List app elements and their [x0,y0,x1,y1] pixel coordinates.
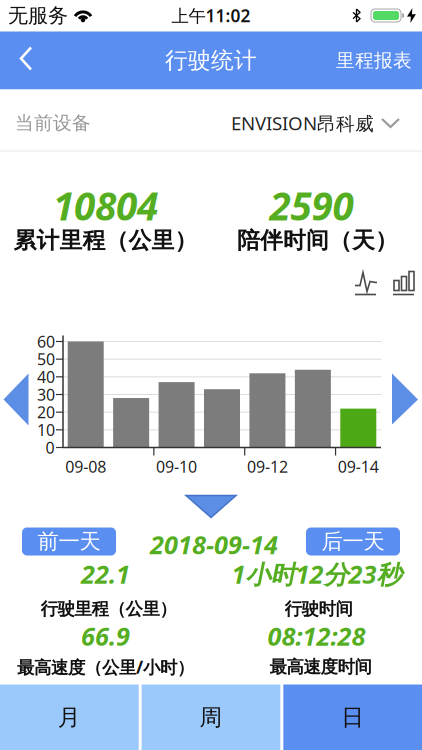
button[interactable]: 前一天 [22,527,116,555]
staticText: 50 [37,348,55,370]
button[interactable]: 后一段 [392,373,418,425]
staticText: 前一天 [37,528,100,555]
staticText: 10 [37,419,55,440]
staticText: 09-12 [247,456,288,477]
staticText: 60 [37,331,55,352]
staticText: 行驶里程（公里） [40,598,176,620]
staticText: 后一天 [321,528,384,555]
staticText: 里程报表 [336,49,412,72]
staticText: 周 [199,704,222,731]
staticText: 2018-09-14 [150,528,278,561]
staticText: 1小时12分23秒 [231,557,401,591]
staticText: 09-10 [156,456,197,477]
staticText: 09-08 [65,456,106,477]
staticText: 20 [37,401,55,423]
button[interactable]: 月 [0,684,139,750]
button[interactable]: 柱状图 [393,269,415,296]
button[interactable]: 周 [142,684,280,750]
staticText: 累计里程（公里） [13,227,197,254]
staticText: 上午11:02 [171,4,250,27]
staticText: 日 [341,704,364,731]
staticText: 30 [37,384,55,405]
button[interactable]: 返回 [0,31,50,89]
staticText: 陪伴时间（天） [237,227,398,254]
staticText: 0 [45,437,54,458]
staticText: 08:12:28 [267,619,365,653]
button[interactable]: 日 [283,684,422,750]
staticText: 最高速度时间 [269,656,371,678]
staticText: 无服务 [8,3,68,28]
button[interactable]: 折线图 [355,269,378,296]
staticText: 最高速度（公里/小时） [17,655,194,678]
staticText: 当前设备 [15,111,91,134]
button[interactable]: 里程报表 [336,37,422,84]
staticText: 09-14 [338,456,379,477]
button[interactable]: 前一段 [3,373,29,425]
staticText: 月 [58,704,81,731]
button[interactable]: 后一天 [306,527,400,555]
staticText: 66.9 [81,619,130,653]
staticText: 行驶时间 [284,598,352,620]
staticText: 2590 [269,180,353,231]
staticText: 40 [37,366,55,387]
staticText: 22.1 [81,557,130,591]
staticText: 行驶统计 [165,47,257,74]
staticText: 10804 [53,180,158,231]
staticText: ENVISION昂科威 [231,111,374,135]
button[interactable]: 当前设备 [0,89,422,150]
